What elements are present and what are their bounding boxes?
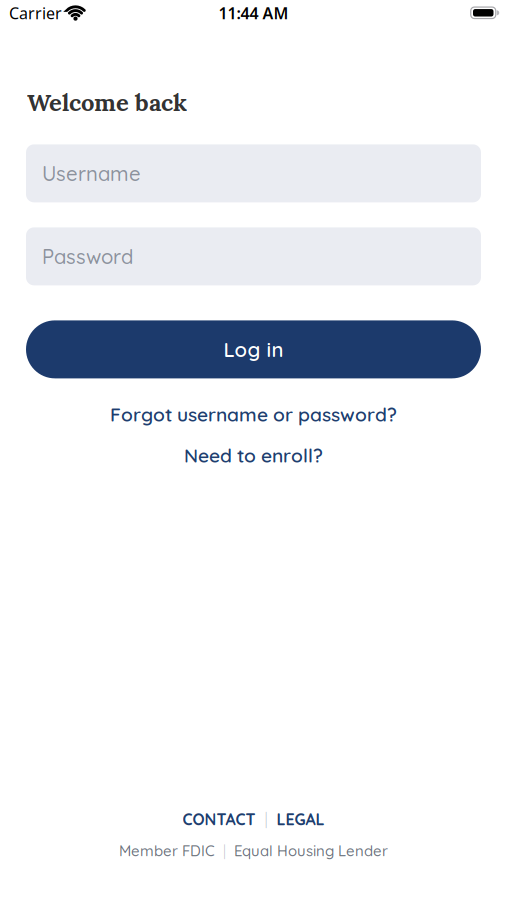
staticText: Equal Housing Lender [234, 841, 388, 860]
button[interactable]: Password [26, 227, 481, 285]
button[interactable]: CONTACT [182, 809, 255, 829]
staticText: CONTACT [182, 809, 255, 829]
button[interactable]: Forgot username or password? [110, 402, 397, 426]
staticText: | [264, 809, 267, 829]
staticText: Forgot username or password? [110, 402, 397, 426]
button[interactable]: LEGAL [276, 809, 324, 829]
staticText: Username [42, 161, 141, 186]
staticText: Carrier [9, 2, 62, 24]
staticText: Need to enroll? [184, 443, 323, 467]
staticText: Log in [223, 337, 283, 362]
staticText: Password [42, 244, 133, 269]
button[interactable]: Log in [26, 320, 481, 378]
staticText: 11:44 AM [218, 2, 288, 24]
staticText: Member FDIC [119, 841, 215, 860]
button[interactable]: Need to enroll? [184, 443, 323, 467]
staticText: LEGAL [276, 809, 324, 829]
button[interactable]: Username [26, 144, 481, 202]
staticText: | [223, 841, 226, 860]
staticText: Welcome back [27, 87, 187, 117]
